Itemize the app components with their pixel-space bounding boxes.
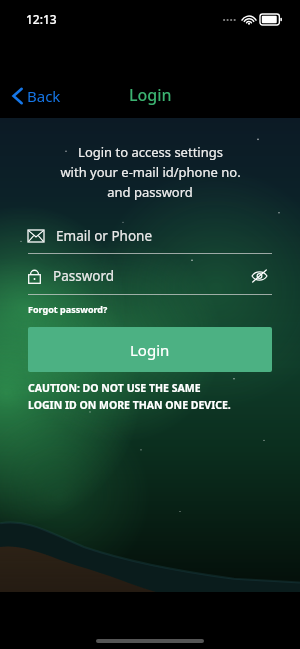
staticText: Email or Phone	[56, 227, 153, 245]
staticText: LOGIN ID ON MORE THAN ONE DEVICE.	[28, 398, 231, 412]
button[interactable]: Back	[8, 82, 65, 110]
staticText: Forgot password?	[28, 303, 108, 315]
staticText: 12:13	[26, 11, 57, 27]
staticText: Login to access settings	[78, 143, 223, 161]
staticText: with your e-mail id/phone no.	[60, 163, 241, 181]
button[interactable]: Login	[28, 327, 272, 372]
staticText: Password	[53, 267, 115, 285]
button[interactable]: Show password	[247, 266, 272, 286]
staticText: Login	[130, 340, 170, 360]
staticText: and password	[107, 183, 193, 201]
button[interactable]: Password	[28, 266, 272, 286]
staticText: CAUTION: DO NOT USE THE SAME	[28, 381, 201, 395]
button[interactable]: Forgot password?	[28, 301, 108, 317]
staticText: Login	[129, 84, 172, 106]
staticText: Back	[27, 86, 61, 106]
button[interactable]: Email or Phone	[28, 227, 272, 245]
